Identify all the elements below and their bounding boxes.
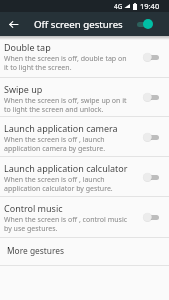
button[interactable]: Swipe up [0, 78, 169, 116]
staticText: More gestures [7, 245, 65, 256]
staticText: Launch application camera [4, 122, 118, 134]
button[interactable]: Toggle Swipe up [143, 92, 159, 102]
staticText: Double tap [4, 41, 51, 53]
staticText: When the screen is off, swipe up on it t… [4, 96, 127, 114]
staticText: When the screen is off , launch applicat… [4, 175, 113, 193]
staticText: When the screen is off , control music b… [4, 215, 128, 233]
button[interactable]: Toggle off screen gestures [137, 18, 152, 30]
staticText: Control music [4, 202, 63, 214]
button[interactable]: Toggle Launch application camera [143, 132, 159, 142]
button[interactable]: Launch application calculator [0, 157, 169, 196]
staticText: Off screen gestures [34, 18, 123, 31]
staticText: Launch application calculator [4, 162, 128, 174]
button[interactable]: Toggle Control music [143, 212, 159, 222]
button[interactable]: Control music [0, 197, 169, 237]
staticText: Swipe up [4, 83, 43, 95]
staticText: When the screen is off , launch applicat… [4, 135, 106, 153]
staticText: 19:40 [140, 1, 160, 11]
staticText: 4G [114, 2, 123, 11]
button[interactable]: Toggle Double tap [143, 52, 159, 62]
button[interactable]: Launch application camera [0, 117, 169, 156]
button[interactable]: Back [0, 12, 26, 36]
button[interactable]: Toggle Launch application calculator [143, 172, 159, 182]
staticText: When the screen is off, double tap on it… [4, 54, 127, 72]
button[interactable]: Double tap [0, 36, 169, 77]
button[interactable]: More gestures [0, 238, 169, 265]
